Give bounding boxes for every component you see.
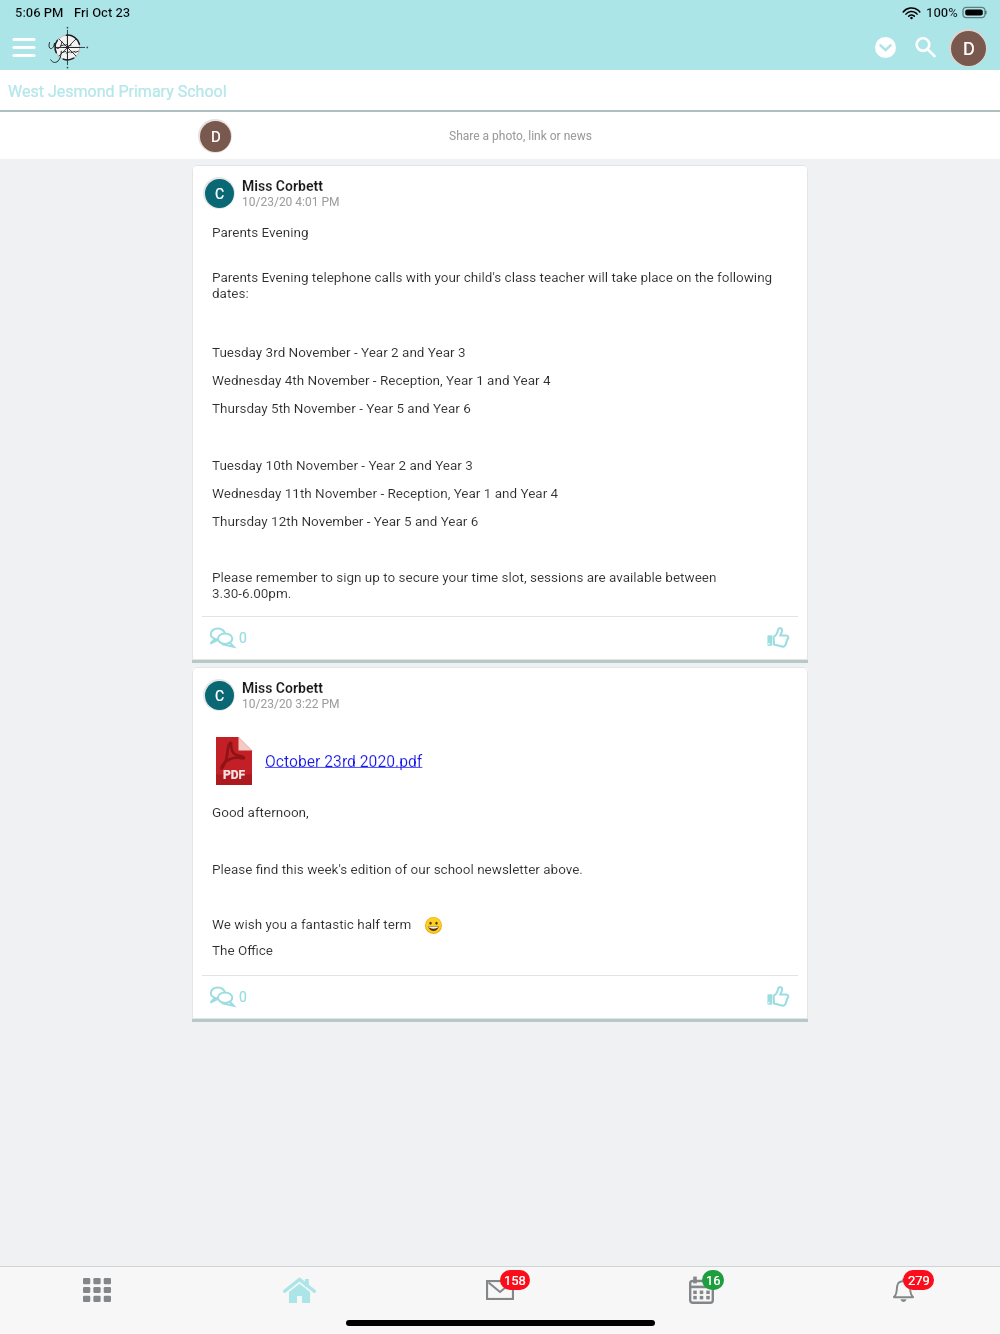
staticText: 0 (239, 630, 247, 646)
button[interactable]: Messages (400, 1267, 600, 1313)
staticText: 10/23/20 3:22 PM (242, 697, 340, 711)
staticText: We wish you a fantastic half term (212, 916, 412, 932)
button[interactable]: Calendar (600, 1267, 800, 1313)
button[interactable]: Profile (946, 25, 990, 70)
staticText: Tuesday 10th November - Year 2 and Year … (212, 457, 473, 473)
button[interactable]: 0 (210, 628, 247, 647)
staticText: Thursday 12th November - Year 5 and Year… (212, 513, 479, 529)
staticText: Parents Evening (212, 224, 309, 240)
staticText: The Office (212, 942, 274, 958)
staticText: 279 (908, 1273, 930, 1288)
staticText: PDF (223, 768, 246, 782)
staticText: Share a photo, link or news (449, 129, 592, 143)
staticText: Miss Corbett (242, 178, 323, 194)
staticText: C (215, 688, 225, 704)
staticText: Thursday 5th November - Year 5 and Year … (212, 400, 471, 416)
staticText: Tuesday 3rd November - Year 2 and Year 3 (212, 344, 466, 360)
button[interactable]: Like (767, 985, 789, 1008)
button[interactable]: Notifications (800, 1267, 1000, 1313)
staticText: D (211, 128, 221, 146)
button[interactable]: D (0, 112, 1000, 159)
button[interactable]: Search (905, 25, 946, 70)
staticText: Fri Oct 23 (74, 5, 131, 20)
staticText: 10/23/20 4:01 PM (242, 195, 340, 209)
staticText: 158 (504, 1273, 526, 1288)
button[interactable]: Apps (0, 1267, 200, 1313)
staticText: Good afternoon, (212, 804, 309, 820)
staticText: Please find this week's edition of our s… (212, 861, 583, 877)
staticText: Miss Corbett (242, 680, 323, 696)
staticText: Wednesday 11th November - Reception, Yea… (212, 485, 559, 501)
button[interactable]: Expand (865, 25, 905, 70)
staticText: 16 (706, 1273, 721, 1288)
button[interactable]: 0 (210, 987, 247, 1006)
staticText: Wednesday 4th November - Reception, Year… (212, 372, 551, 388)
staticText: C (215, 186, 225, 202)
staticText: 0 (239, 989, 247, 1005)
staticText: Parents Evening telephone calls with you… (212, 269, 790, 302)
staticText: 5:06 PM (15, 5, 64, 20)
staticText: Please remember to sign up to secure you… (212, 569, 790, 602)
staticText: 100% (926, 5, 958, 20)
button[interactable]: Home (200, 1267, 400, 1313)
button[interactable]: Like (767, 626, 789, 649)
button[interactable]: Menu (0, 25, 47, 70)
staticText: October 23rd 2020.pdf (265, 752, 423, 770)
button[interactable]: PDF (216, 737, 423, 785)
staticText: West Jesmond Primary School (8, 82, 227, 101)
staticText: D (963, 38, 975, 59)
